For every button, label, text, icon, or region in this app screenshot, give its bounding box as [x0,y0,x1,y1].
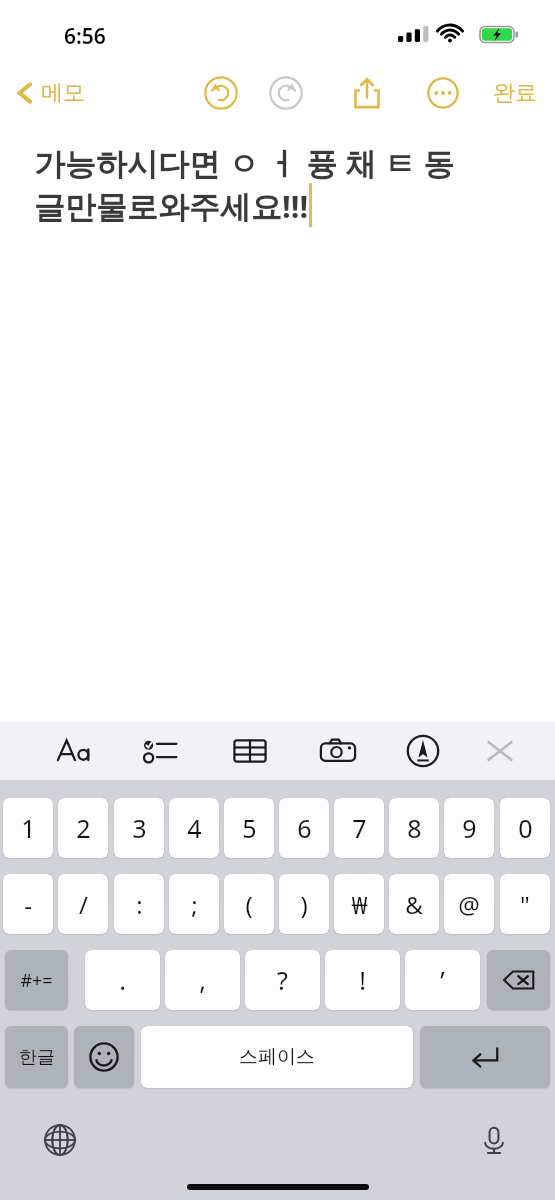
button[interactable]: ₩ [334,874,384,934]
button[interactable]: - [3,874,53,934]
button[interactable]: Share [344,70,390,116]
button[interactable]: " [500,874,550,934]
staticText: #+= [20,968,53,993]
staticText: 1 [21,811,36,845]
button[interactable]: Redo [263,70,309,116]
staticText: 글만물로와주세요!!! [34,185,309,227]
button[interactable]: ; [169,874,219,934]
button[interactable]: Undo [198,70,244,116]
button[interactable]: 스페이스 [141,1026,413,1088]
staticText: 3 [132,811,147,845]
button[interactable]: 8 [389,798,439,858]
button[interactable]: Text format [49,722,101,780]
button[interactable]: / [58,874,108,934]
button[interactable]: Markup [397,722,449,780]
button[interactable]: 완료 [485,73,545,113]
button[interactable]: More [420,70,466,116]
button[interactable]: @ [444,874,494,934]
staticText: 완료 [493,79,537,107]
button[interactable]: , [165,950,240,1010]
staticText: @ [458,888,480,921]
staticText: 4 [187,811,202,845]
button[interactable]: Checklist [134,722,186,780]
button[interactable]: 1 [3,798,53,858]
button[interactable]: 3 [114,798,164,858]
staticText: ₩ [351,888,368,921]
staticText: 한글 [19,1046,55,1069]
button[interactable]: : [114,874,164,934]
staticText: ’ [440,963,445,997]
staticText: 메모 [41,79,85,107]
staticText: ( [245,888,253,921]
staticText: 9 [462,811,477,845]
button[interactable]: . [85,950,160,1010]
staticText: : [136,888,143,921]
staticText: 가능하시다면 ㅇ ㅓ 퓽 채 ㅌ 동 [34,142,455,184]
button[interactable]: ( [224,874,274,934]
staticText: & [405,888,423,921]
button[interactable]: 9 [444,798,494,858]
button[interactable]: Change keyboard [36,1116,84,1164]
staticText: . [119,963,126,997]
button[interactable]: Return [420,1026,550,1088]
button[interactable]: 0 [500,798,550,858]
staticText: - [24,888,32,921]
staticText: ) [300,888,308,921]
staticText: 6 [297,811,312,845]
staticText: ! [359,963,366,997]
staticText: 8 [407,811,422,845]
button[interactable]: ! [325,950,400,1010]
button[interactable]: ’ [405,950,480,1010]
button[interactable]: 2 [58,798,108,858]
staticText: ; [191,888,198,921]
staticText: 7 [352,811,367,845]
staticText: 2 [76,811,91,845]
staticText: 5 [242,811,257,845]
button[interactable]: Camera [312,722,364,780]
staticText: 6:56 [64,22,106,51]
button[interactable]: Dictation [470,1116,518,1164]
button[interactable]: Delete [487,950,550,1010]
button[interactable]: 6 [279,798,329,858]
button[interactable]: ? [245,950,320,1010]
staticText: / [79,888,88,921]
button[interactable]: 메모 [10,73,91,113]
button[interactable]: 7 [334,798,384,858]
staticText: " [520,888,530,921]
button[interactable]: 한글 [5,1026,68,1088]
button[interactable]: Close [474,722,526,780]
staticText: ? [277,963,288,997]
button[interactable]: 5 [224,798,274,858]
button[interactable]: #+= [5,950,68,1010]
button[interactable]: Table [224,722,276,780]
staticText: 0 [518,811,533,845]
staticText: , [199,963,206,997]
button[interactable]: & [389,874,439,934]
button[interactable]: 4 [169,798,219,858]
button[interactable]: Emoji [74,1026,134,1088]
button[interactable]: ) [279,874,329,934]
staticText: 스페이스 [239,1045,315,1069]
